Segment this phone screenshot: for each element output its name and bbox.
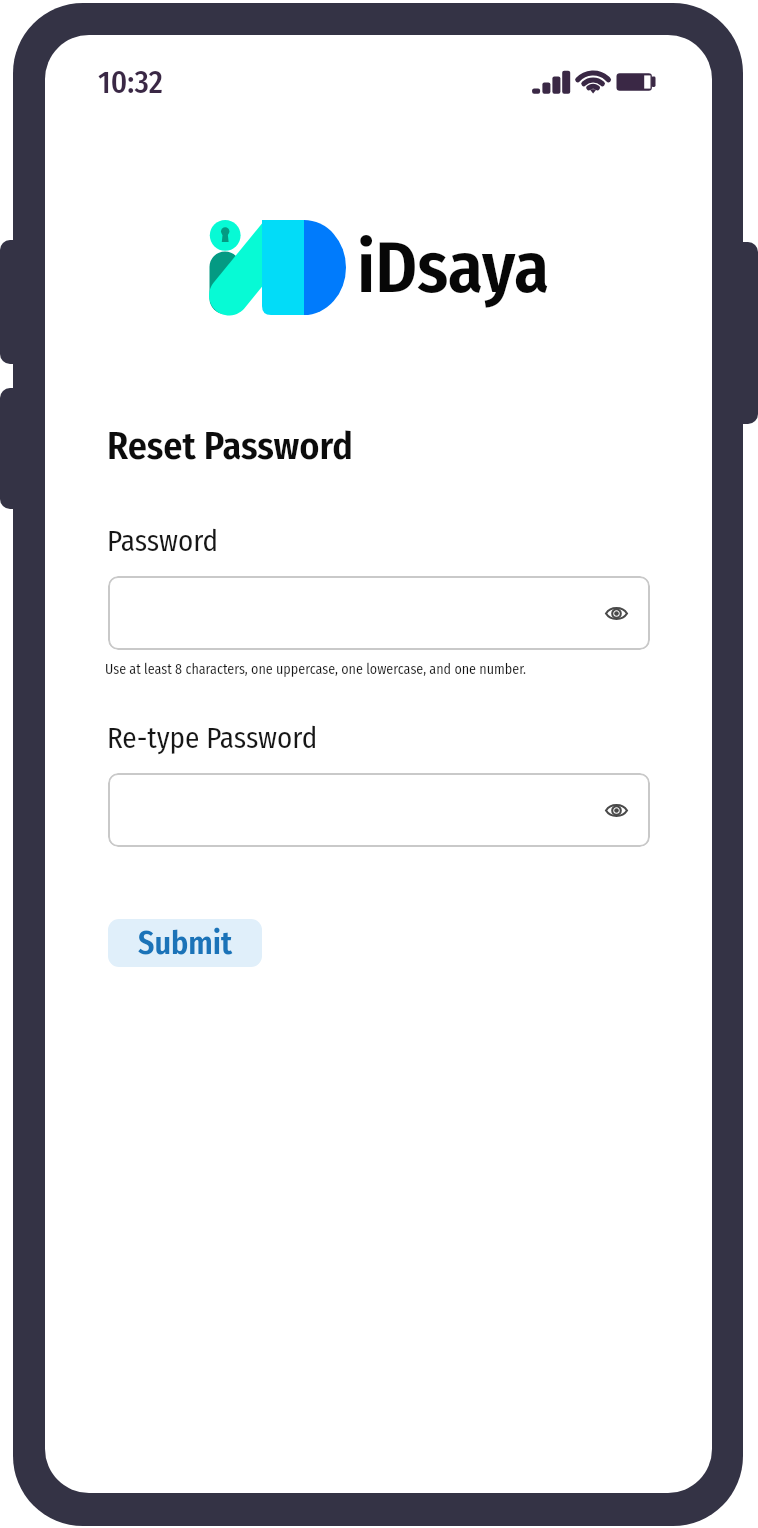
- staticText: Use at least 8 characters, one uppercase…: [105, 661, 526, 678]
- staticText: Submit: [138, 924, 233, 962]
- staticText: 10:32: [98, 64, 163, 101]
- staticText: Re-type Password: [107, 721, 318, 756]
- staticText: iDsaya: [357, 226, 550, 311]
- staticText: Reset Password: [107, 423, 353, 469]
- button[interactable]: Show password: [599, 793, 633, 827]
- button[interactable]: Show password: [108, 576, 650, 650]
- button[interactable]: Show password: [599, 596, 633, 630]
- button[interactable]: Show password: [108, 773, 650, 847]
- button[interactable]: Submit: [108, 919, 262, 967]
- staticText: Password: [107, 524, 219, 559]
